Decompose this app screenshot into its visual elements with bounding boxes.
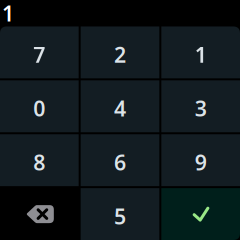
staticText: 2	[114, 40, 126, 68]
button[interactable]: 9	[161, 134, 240, 186]
button[interactable]: 7	[0, 26, 79, 78]
button[interactable]: 1	[161, 26, 240, 78]
button[interactable]: Confirm	[161, 188, 240, 240]
staticText: 6	[114, 148, 126, 176]
staticText: 8	[33, 148, 45, 176]
button[interactable]: 2	[81, 26, 159, 78]
staticText: 3	[195, 94, 207, 122]
staticText: 0	[33, 94, 45, 122]
button[interactable]: 0	[0, 80, 79, 132]
button[interactable]: Delete	[0, 188, 79, 240]
staticText: 1	[195, 40, 207, 68]
staticText: 9	[195, 148, 207, 176]
staticText: 1	[2, 0, 14, 27]
staticText: 7	[33, 40, 45, 68]
button[interactable]: 4	[81, 80, 159, 132]
button[interactable]: 5	[81, 188, 159, 240]
staticText: 5	[114, 202, 126, 230]
button[interactable]: 3	[161, 80, 240, 132]
button[interactable]: 8	[0, 134, 79, 186]
staticText: 4	[114, 94, 126, 122]
button[interactable]: 6	[81, 134, 159, 186]
